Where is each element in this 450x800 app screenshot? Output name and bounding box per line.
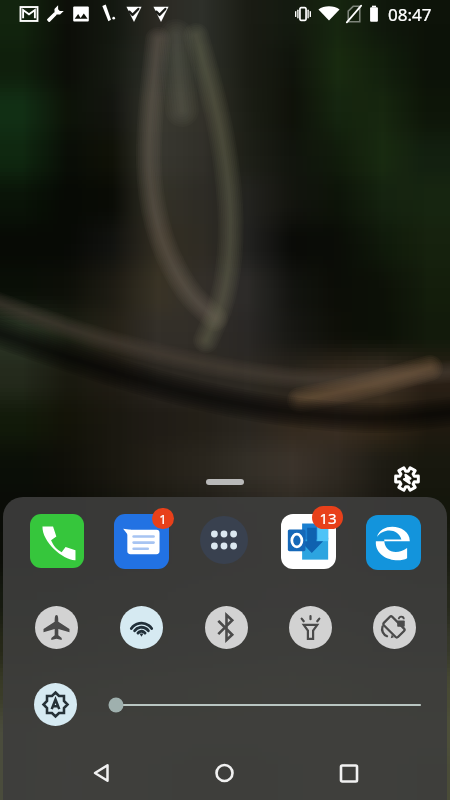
button[interactable]: Home — [202, 746, 248, 792]
button[interactable]: Recent apps — [326, 746, 372, 792]
button[interactable]: Toggle — [120, 606, 163, 649]
button[interactable]: Back — [78, 746, 124, 792]
button[interactable]: Toggle — [205, 606, 248, 649]
button[interactable]: App — [30, 514, 84, 568]
button[interactable]: Expand panel — [206, 479, 244, 485]
staticText: 08:47 — [388, 3, 432, 26]
staticText: 13 — [319, 508, 337, 528]
button[interactable]: Auto brightness — [34, 683, 77, 726]
button[interactable]: Toggle — [289, 606, 332, 649]
button[interactable]: All apps — [200, 516, 248, 564]
button[interactable]: Toggle — [373, 606, 416, 649]
button[interactable]: Toggle — [35, 606, 78, 649]
button[interactable]: App — [281, 514, 336, 569]
button[interactable]: App — [114, 514, 169, 569]
staticText: 1 — [159, 510, 167, 528]
button[interactable]: Brightness slider — [108, 695, 428, 715]
button[interactable]: Settings — [392, 464, 422, 494]
button[interactable]: App — [366, 515, 421, 570]
